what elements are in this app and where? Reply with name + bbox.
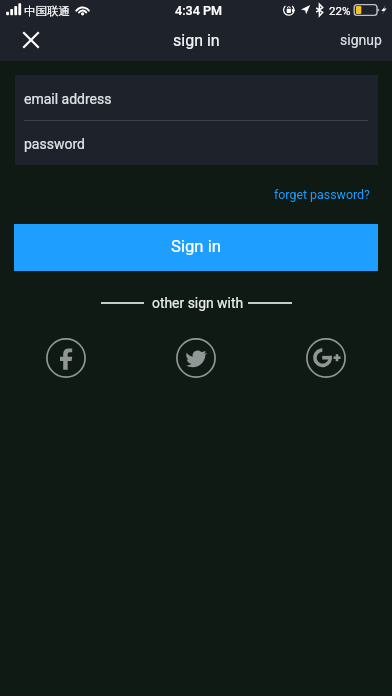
button[interactable]: Close — [9, 18, 53, 62]
staticText: sign in — [173, 31, 220, 50]
staticText: 中国联通 — [24, 4, 70, 18]
staticText: signup — [340, 32, 382, 48]
button[interactable]: password — [15, 121, 378, 164]
button[interactable]: signup — [329, 24, 392, 56]
button[interactable]: Sign in — [14, 224, 378, 271]
staticText: forget password? — [274, 187, 370, 202]
staticText: other sign with — [152, 295, 244, 311]
button[interactable]: email address — [15, 75, 378, 120]
button[interactable]: Facebook — [46, 338, 86, 378]
staticText: 22% — [329, 4, 351, 17]
staticText: email address — [24, 91, 112, 107]
button[interactable]: Google Plus — [306, 338, 346, 378]
button[interactable]: Twitter — [176, 338, 216, 378]
button[interactable]: forget password? — [262, 175, 392, 214]
staticText: password — [24, 136, 85, 152]
staticText: Sign in — [171, 237, 221, 257]
staticText: 4:34 PM — [175, 3, 222, 18]
